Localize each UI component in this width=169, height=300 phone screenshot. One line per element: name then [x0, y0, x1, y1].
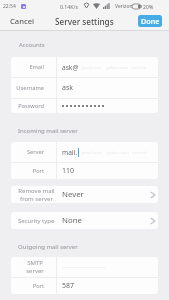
staticText: SMTP server [26, 259, 44, 275]
staticText: mail. [62, 148, 78, 157]
button[interactable]: Username [11, 78, 158, 98]
staticText: ask [62, 83, 74, 93]
button[interactable]: Security type [11, 212, 158, 229]
staticText: Security type [18, 217, 55, 225]
staticText: gmail.com yahoo.com hotmail [79, 150, 148, 156]
button[interactable]: Remove mail from server [11, 186, 158, 203]
button[interactable]: SMTP server [11, 257, 158, 277]
staticText: Never [62, 189, 84, 200]
staticText: Username [16, 84, 44, 92]
staticText: Password [18, 102, 44, 110]
button[interactable]: Server [11, 142, 158, 162]
staticText: ask@ [62, 63, 79, 72]
button[interactable]: Email [11, 57, 158, 77]
staticText: Server settings [55, 16, 114, 27]
staticText: Email [29, 63, 44, 71]
staticText: Outgoing mail server [18, 243, 78, 251]
staticText: Cancel [10, 16, 35, 26]
staticText: Verizon [115, 3, 133, 10]
staticText: 110 [62, 166, 75, 176]
button[interactable]: Port [11, 278, 158, 294]
staticText: gmail.com yahoo.com outlook [79, 65, 147, 71]
staticText: ••••••••••••••••••••••••••••• [62, 265, 106, 270]
staticText: None [62, 215, 82, 226]
staticText: Port [32, 167, 44, 175]
button[interactable]: Done [138, 15, 162, 27]
staticText: 20% [143, 3, 154, 10]
button[interactable]: Port [11, 163, 158, 179]
staticText: Port [32, 282, 44, 290]
staticText: Done [141, 16, 160, 26]
staticText: Accounts [19, 41, 45, 49]
staticText: 587 [62, 281, 75, 291]
staticText: Remove mail from server [18, 187, 55, 203]
staticText: Server [26, 148, 44, 156]
staticText: Incoming mail server [18, 127, 78, 135]
staticText: 0.14K/s [60, 3, 78, 10]
staticText: 22:54 [3, 3, 16, 10]
button[interactable]: Cancel [5, 12, 40, 30]
button[interactable]: Password [11, 99, 158, 113]
